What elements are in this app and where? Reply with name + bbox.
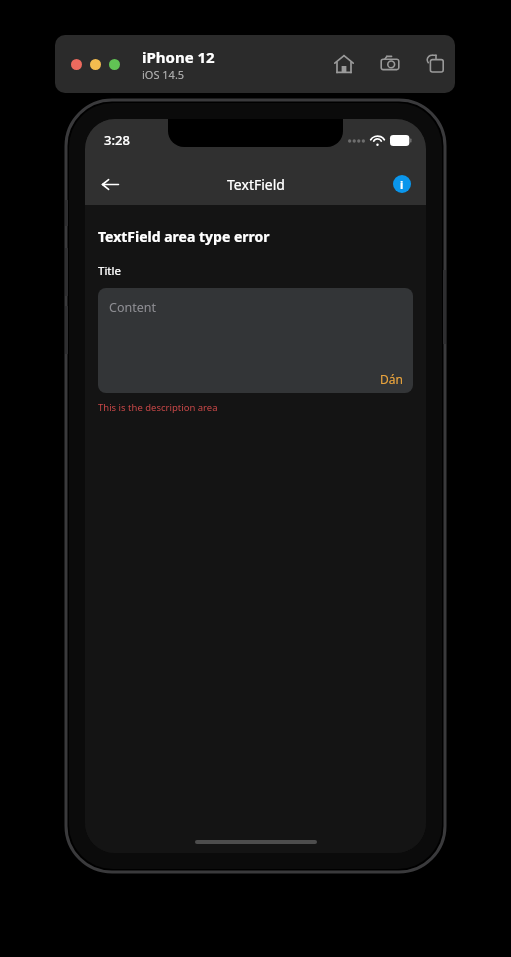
button[interactable]: [109, 59, 120, 70]
button[interactable]: Home: [327, 47, 361, 81]
button[interactable]: Dán: [380, 371, 403, 387]
staticText: 3:28: [104, 131, 130, 149]
staticText: Content: [109, 299, 156, 316]
button[interactable]: [71, 59, 82, 70]
button[interactable]: Rotate: [419, 47, 453, 81]
staticText: iOS 14.5: [142, 67, 185, 82]
button[interactable]: Info: [387, 169, 417, 199]
button[interactable]: Content: [98, 288, 413, 393]
button[interactable]: Screenshot: [373, 47, 407, 81]
button[interactable]: [90, 59, 101, 70]
staticText: Title: [98, 263, 121, 279]
staticText: This is the description area: [98, 401, 218, 414]
staticText: TextField: [227, 175, 285, 194]
staticText: i: [400, 177, 404, 192]
staticText: iPhone 12: [142, 47, 215, 67]
staticText: TextField area type error: [98, 227, 270, 246]
button[interactable]: Back: [93, 167, 127, 201]
